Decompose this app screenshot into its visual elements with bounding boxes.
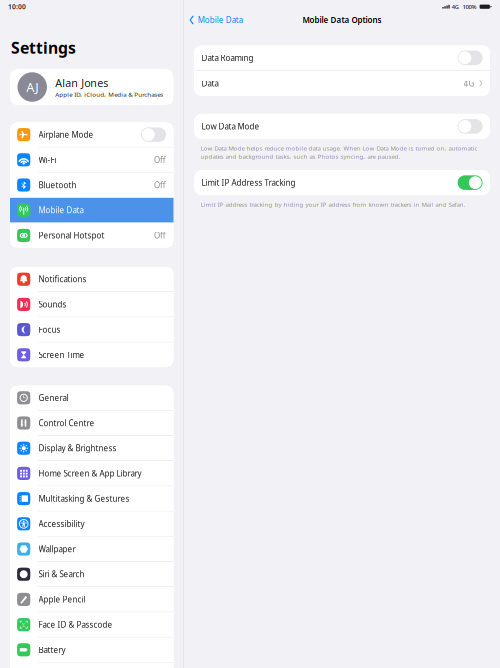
button[interactable]: Focus (10, 317, 173, 342)
staticText: Home Screen & App Library (38, 468, 141, 479)
button[interactable]: Personal Hotspot (10, 223, 173, 248)
staticText: Wallpaper (38, 544, 75, 554)
button[interactable]: Sounds (10, 292, 173, 317)
staticText: Apple Pencil (38, 594, 85, 605)
button[interactable]: Control Centre (10, 411, 173, 435)
button[interactable]: Face ID & Passcode (10, 612, 173, 637)
button[interactable]: Switch, off (458, 50, 483, 65)
button[interactable]: Wi-Fi (10, 147, 173, 172)
staticText: Off (154, 180, 166, 190)
staticText: Limit IP address tracking by hiding your… (200, 200, 465, 209)
staticText: Bluetooth (38, 180, 76, 190)
staticText: Siri & Search (38, 569, 84, 580)
staticText: Alan Jones (55, 75, 108, 90)
staticText: Multitasking & Gestures (38, 493, 129, 504)
staticText: Control Centre (38, 418, 94, 428)
staticText: 4G (463, 78, 474, 89)
button[interactable]: Switch, off (458, 119, 483, 134)
button[interactable]: Notifications (10, 267, 173, 291)
button[interactable]: Accessibility (10, 511, 173, 536)
staticText: 100% (463, 3, 477, 11)
staticText: Data (202, 78, 219, 89)
button[interactable]: Multitasking & Gestures (10, 486, 173, 511)
button[interactable]: Airplane Mode (10, 122, 173, 147)
button[interactable]: Apple Pencil (10, 587, 173, 612)
staticText: Apple ID, iCloud, Media & Purchases (55, 90, 163, 99)
staticText: Wi-Fi (38, 154, 56, 165)
staticText: Face ID & Passcode (38, 619, 112, 630)
button[interactable]: Switch, off (141, 127, 166, 142)
button[interactable]: Limit IP Address Tracking (194, 170, 490, 195)
staticText: AJ (26, 78, 38, 96)
button[interactable]: General (10, 385, 173, 410)
staticText: Limit IP Address Tracking (202, 177, 296, 188)
staticText: Off (154, 230, 166, 241)
button[interactable]: Home Screen & App Library (10, 461, 173, 486)
button[interactable]: Data (194, 71, 490, 96)
button[interactable]: Bluetooth (10, 173, 173, 197)
staticText: 4G (452, 3, 459, 11)
staticText: Battery (38, 644, 65, 655)
staticText: Mobile Data Options (303, 15, 382, 25)
staticText: 10:00 (8, 2, 26, 11)
staticText: Notifications (38, 274, 86, 285)
button[interactable]: Wallpaper (10, 537, 173, 561)
button[interactable]: Low Data Mode (194, 114, 490, 139)
button[interactable]: Mobile Data (10, 198, 173, 222)
staticText: Off (154, 154, 166, 165)
staticText: Personal Hotspot (38, 230, 104, 241)
staticText: Focus (38, 324, 60, 335)
button[interactable]: Siri & Search (10, 562, 173, 586)
staticText: Settings (11, 37, 76, 58)
staticText: Accessibility (38, 518, 84, 529)
button[interactable]: Switch, on (458, 175, 483, 190)
staticText: Low Data Mode (202, 121, 260, 132)
button[interactable]: AJ (10, 69, 173, 105)
staticText: General (38, 392, 68, 403)
button[interactable]: Battery (10, 637, 173, 662)
staticText: Display & Brightness (38, 443, 116, 454)
button[interactable]: Screen Time (10, 342, 173, 367)
staticText: Mobile Data (198, 15, 243, 25)
staticText: Sounds (38, 299, 66, 310)
staticText: Data Roaming (202, 52, 254, 63)
staticText: Low Data Mode helps reduce mobile data u… (200, 144, 477, 160)
button[interactable]: Data Roaming (194, 45, 490, 70)
staticText: Mobile Data (38, 205, 83, 216)
button[interactable]: Display & Brightness (10, 436, 173, 460)
staticText: Screen Time (38, 349, 84, 360)
button[interactable]: Mobile Data (184, 11, 243, 29)
staticText: Airplane Mode (38, 129, 93, 140)
